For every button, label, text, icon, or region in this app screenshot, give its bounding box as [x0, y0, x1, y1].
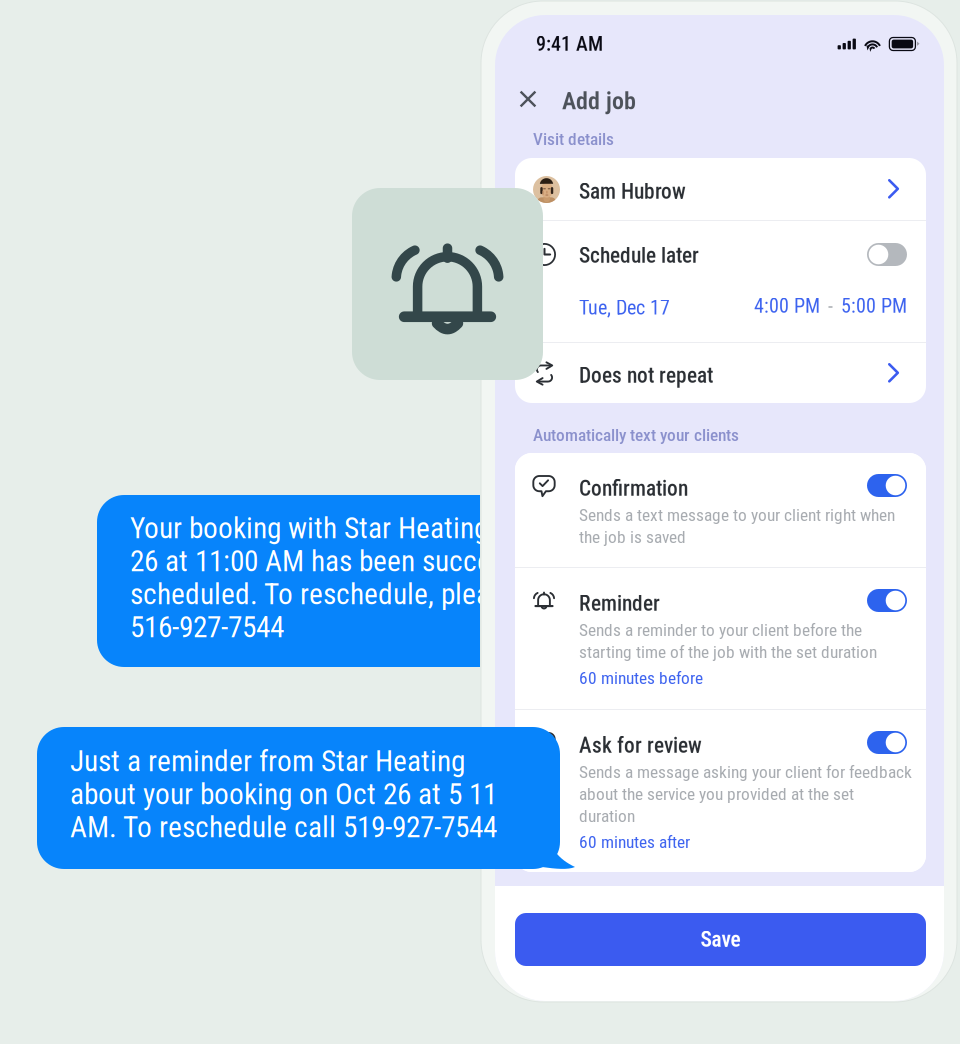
- staticText: Automatically text your clients: [533, 425, 739, 445]
- staticText: Visit details: [533, 129, 614, 149]
- staticText: about the service you provided at the se…: [579, 784, 854, 804]
- button[interactable]: Sam Hubrow: [515, 158, 926, 220]
- staticText: Your booking with Star Heating on Oct: [130, 511, 572, 545]
- staticText: 60 minutes after: [579, 832, 690, 852]
- staticText: 516-927-7544: [130, 610, 284, 644]
- staticText: Save: [700, 927, 740, 952]
- staticText: 4:00 PM: [754, 294, 820, 318]
- staticText: Just a reminder from Star Heating: [70, 744, 465, 778]
- button[interactable]: Reminder: [515, 568, 926, 710]
- button[interactable]: Close: [511, 82, 545, 116]
- staticText: scheduled. To reschedule, please call: [130, 577, 566, 611]
- staticText: Sends a text message to your client righ…: [579, 505, 895, 525]
- staticText: Reminder: [579, 591, 660, 616]
- staticText: Ask for review: [579, 733, 702, 758]
- staticText: 9:41 AM: [536, 32, 603, 56]
- button[interactable]: Ask for review: [515, 710, 926, 872]
- staticText: Sam Hubrow: [579, 179, 686, 204]
- button[interactable]: Does not repeat: [515, 343, 926, 404]
- staticText: Add job: [562, 87, 636, 115]
- button[interactable]: Save: [515, 913, 926, 966]
- staticText: 60 minutes before: [579, 668, 703, 688]
- staticText: Sends a message asking your client for f…: [579, 762, 912, 782]
- button[interactable]: Confirmation: [515, 453, 926, 568]
- staticText: Does not repeat: [579, 363, 713, 388]
- staticText: AM. To reschedule call 519-927-7544: [70, 810, 497, 844]
- staticText: Sends a reminder to your client before t…: [579, 620, 862, 640]
- staticText: Tue, Dec 17: [579, 296, 670, 319]
- staticText: 26 at 11:00 AM has been successfully: [130, 544, 566, 578]
- staticText: Schedule later: [579, 243, 699, 268]
- staticText: 5:00 PM: [841, 294, 907, 318]
- staticText: duration: [579, 806, 635, 826]
- staticText: starting time of the job with the set du…: [579, 642, 877, 662]
- staticText: Confirmation: [579, 476, 688, 501]
- staticText: about your booking on Oct 26 at 5 11: [70, 777, 497, 811]
- staticText: the job is saved: [579, 527, 686, 547]
- staticText: -: [828, 294, 833, 318]
